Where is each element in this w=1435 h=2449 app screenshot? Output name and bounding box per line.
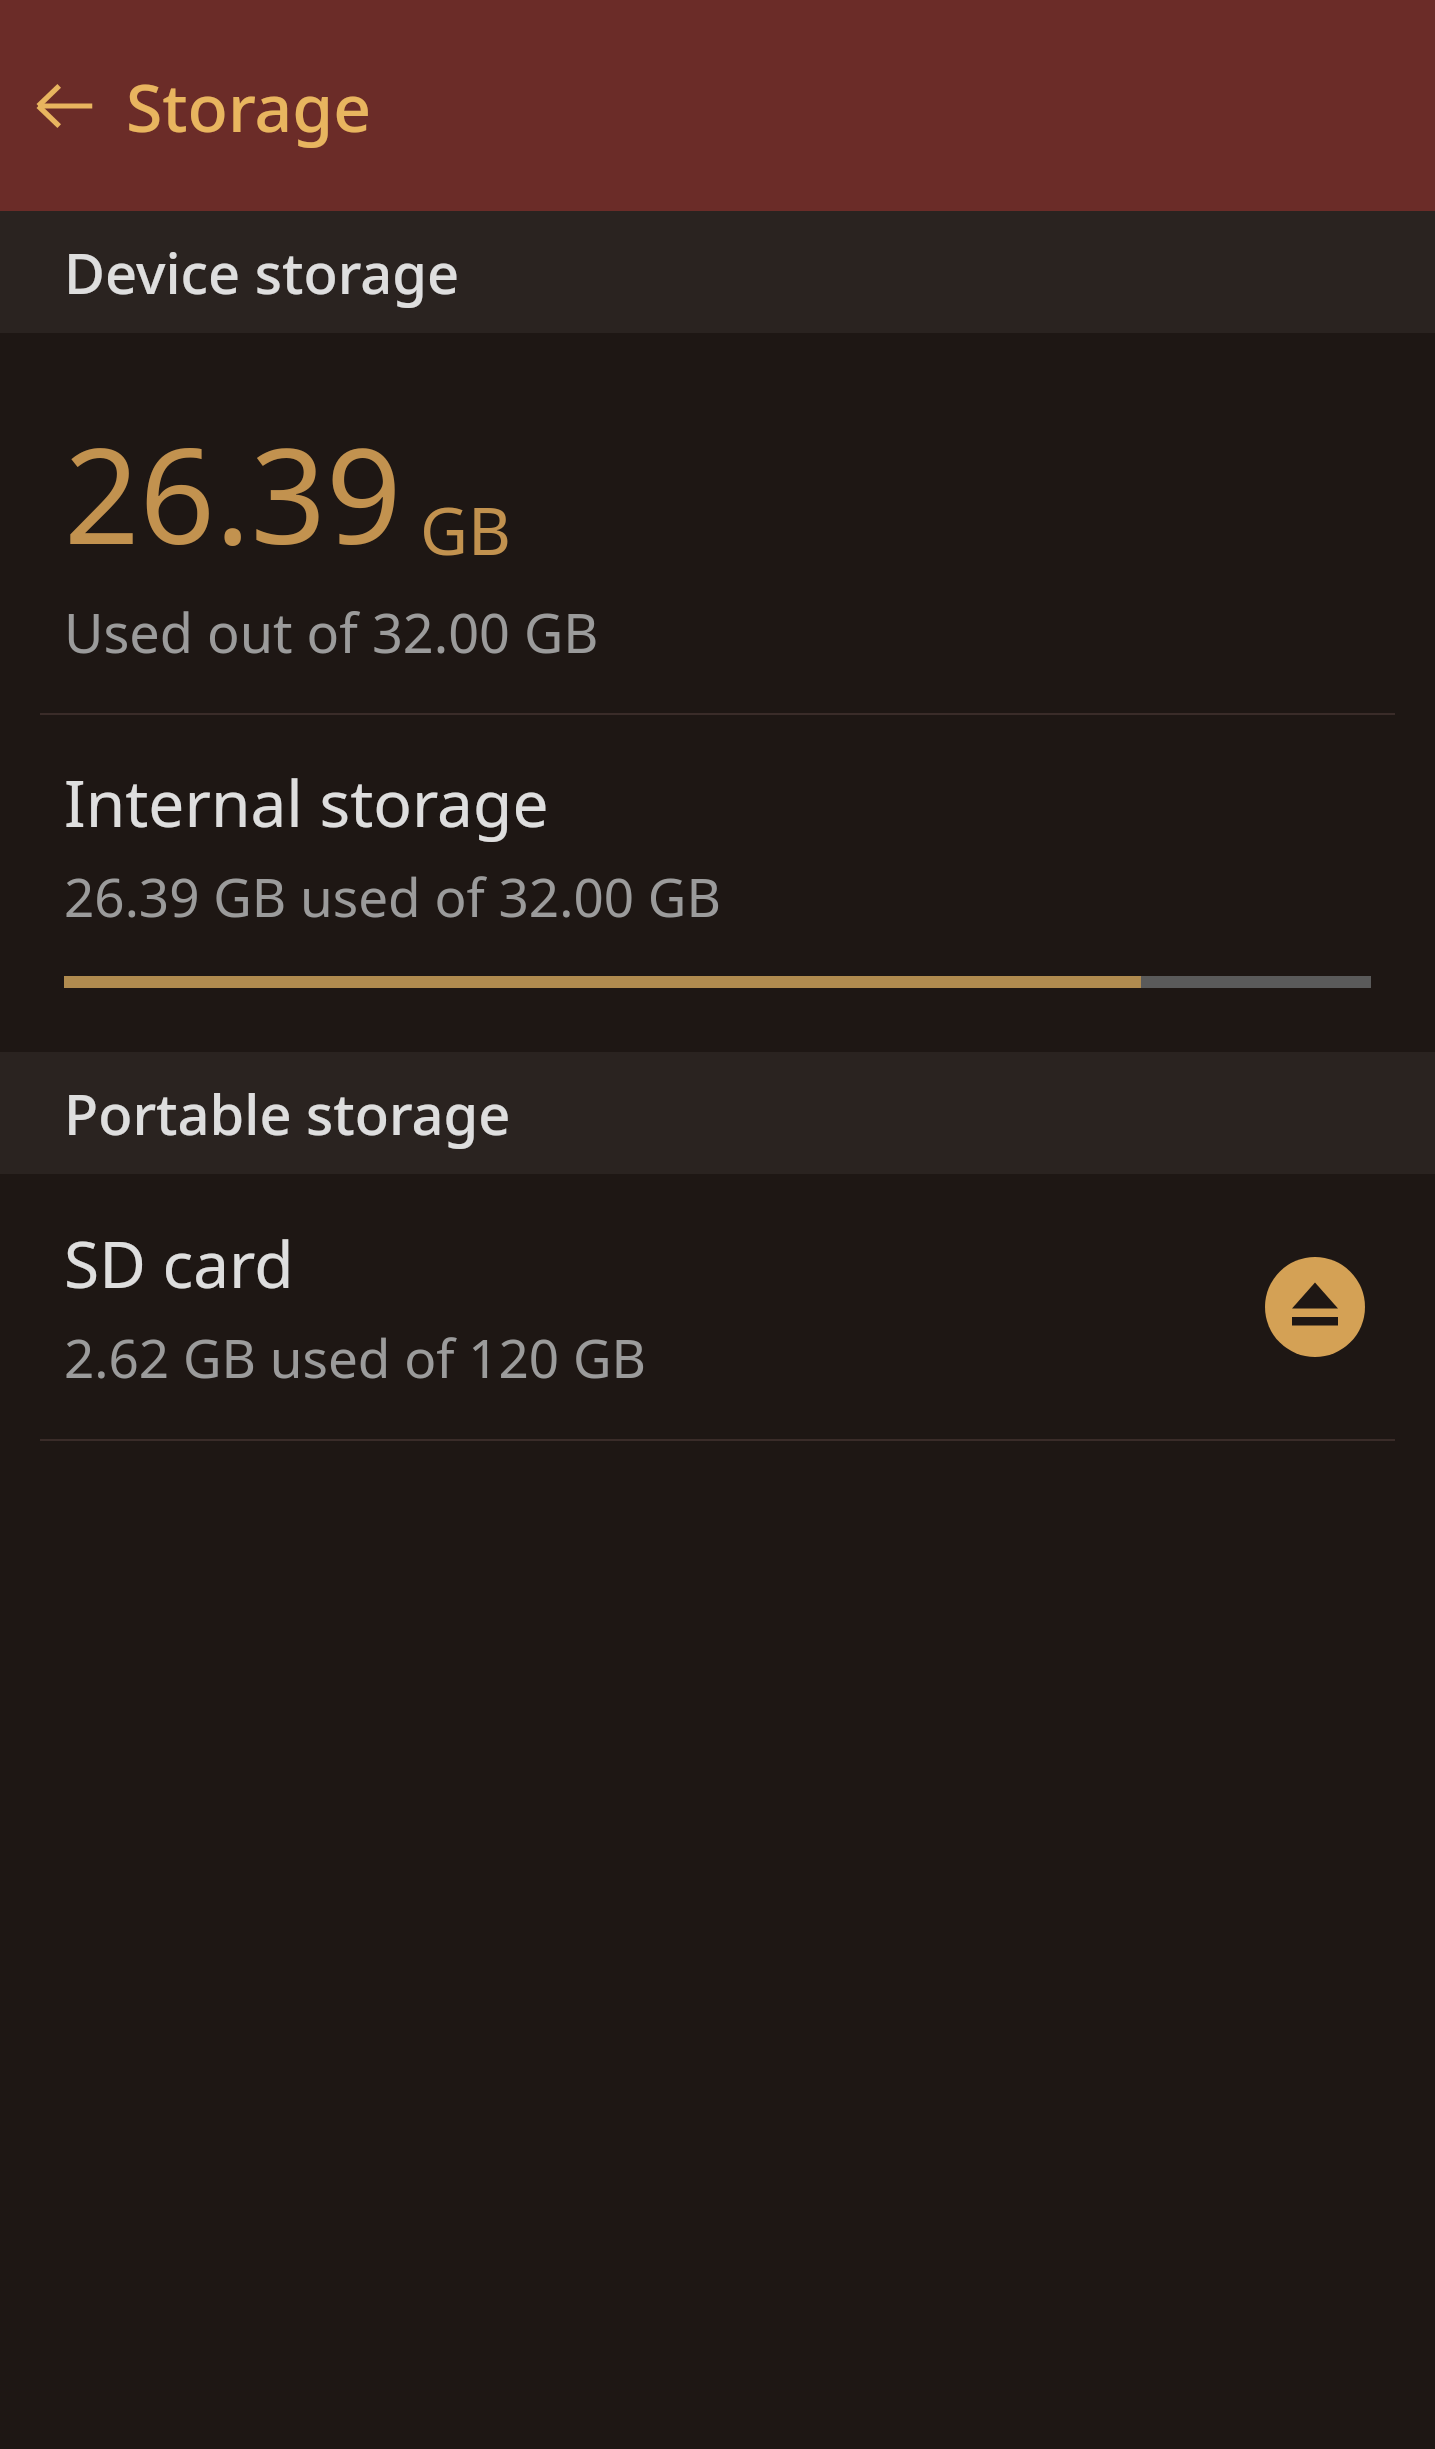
staticText: Portable storage xyxy=(64,1075,511,1151)
button[interactable]: Eject SD card xyxy=(1259,1251,1371,1363)
button[interactable]: Back xyxy=(22,63,108,149)
staticText: Internal storage xyxy=(64,759,549,846)
staticText: 2.62 GB used of 120 GB xyxy=(64,1321,646,1393)
button[interactable]: SD card xyxy=(0,1174,1435,1439)
staticText: Storage xyxy=(126,61,372,151)
staticText: 26.39 GB used of 32.00 GB xyxy=(64,860,721,932)
staticText: GB xyxy=(420,484,511,574)
button[interactable]: 26.39 xyxy=(0,333,1435,713)
button[interactable]: Internal storage xyxy=(0,715,1435,1018)
staticText: Used out of 32.00 GB xyxy=(64,595,599,669)
staticText: 26.39 xyxy=(64,403,402,583)
staticText: SD card xyxy=(64,1220,294,1307)
staticText: Device storage xyxy=(64,234,460,310)
